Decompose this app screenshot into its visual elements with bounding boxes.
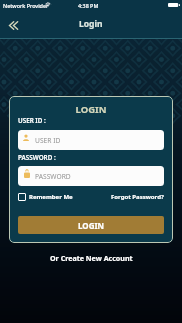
- staticText: PASSWORD :: [18, 153, 56, 162]
- button[interactable]: LOGIN: [18, 216, 164, 234]
- button[interactable]: PASSWORD: [18, 166, 164, 186]
- staticText: USER ID: [35, 136, 61, 145]
- button[interactable]: Forgot Password?: [111, 193, 164, 201]
- staticText: LOGIN: [78, 220, 105, 231]
- staticText: Forgot Password?: [111, 193, 164, 201]
- staticText: PASSWORD: [35, 172, 71, 181]
- staticText: 4:38 PM: [78, 2, 99, 9]
- button[interactable]: Back: [2, 14, 24, 36]
- staticText: USER ID :: [18, 116, 46, 125]
- staticText: Network Provider: [3, 2, 49, 9]
- staticText: LOGIN: [18, 103, 164, 116]
- staticText: Remember Me: [29, 193, 73, 201]
- button[interactable]: Or Create New Account: [0, 251, 182, 265]
- button[interactable]: USER ID: [18, 130, 164, 150]
- button[interactable]: Remember Me: [18, 193, 73, 201]
- staticText: Login: [79, 18, 103, 30]
- staticText: Or Create New Account: [50, 253, 133, 263]
